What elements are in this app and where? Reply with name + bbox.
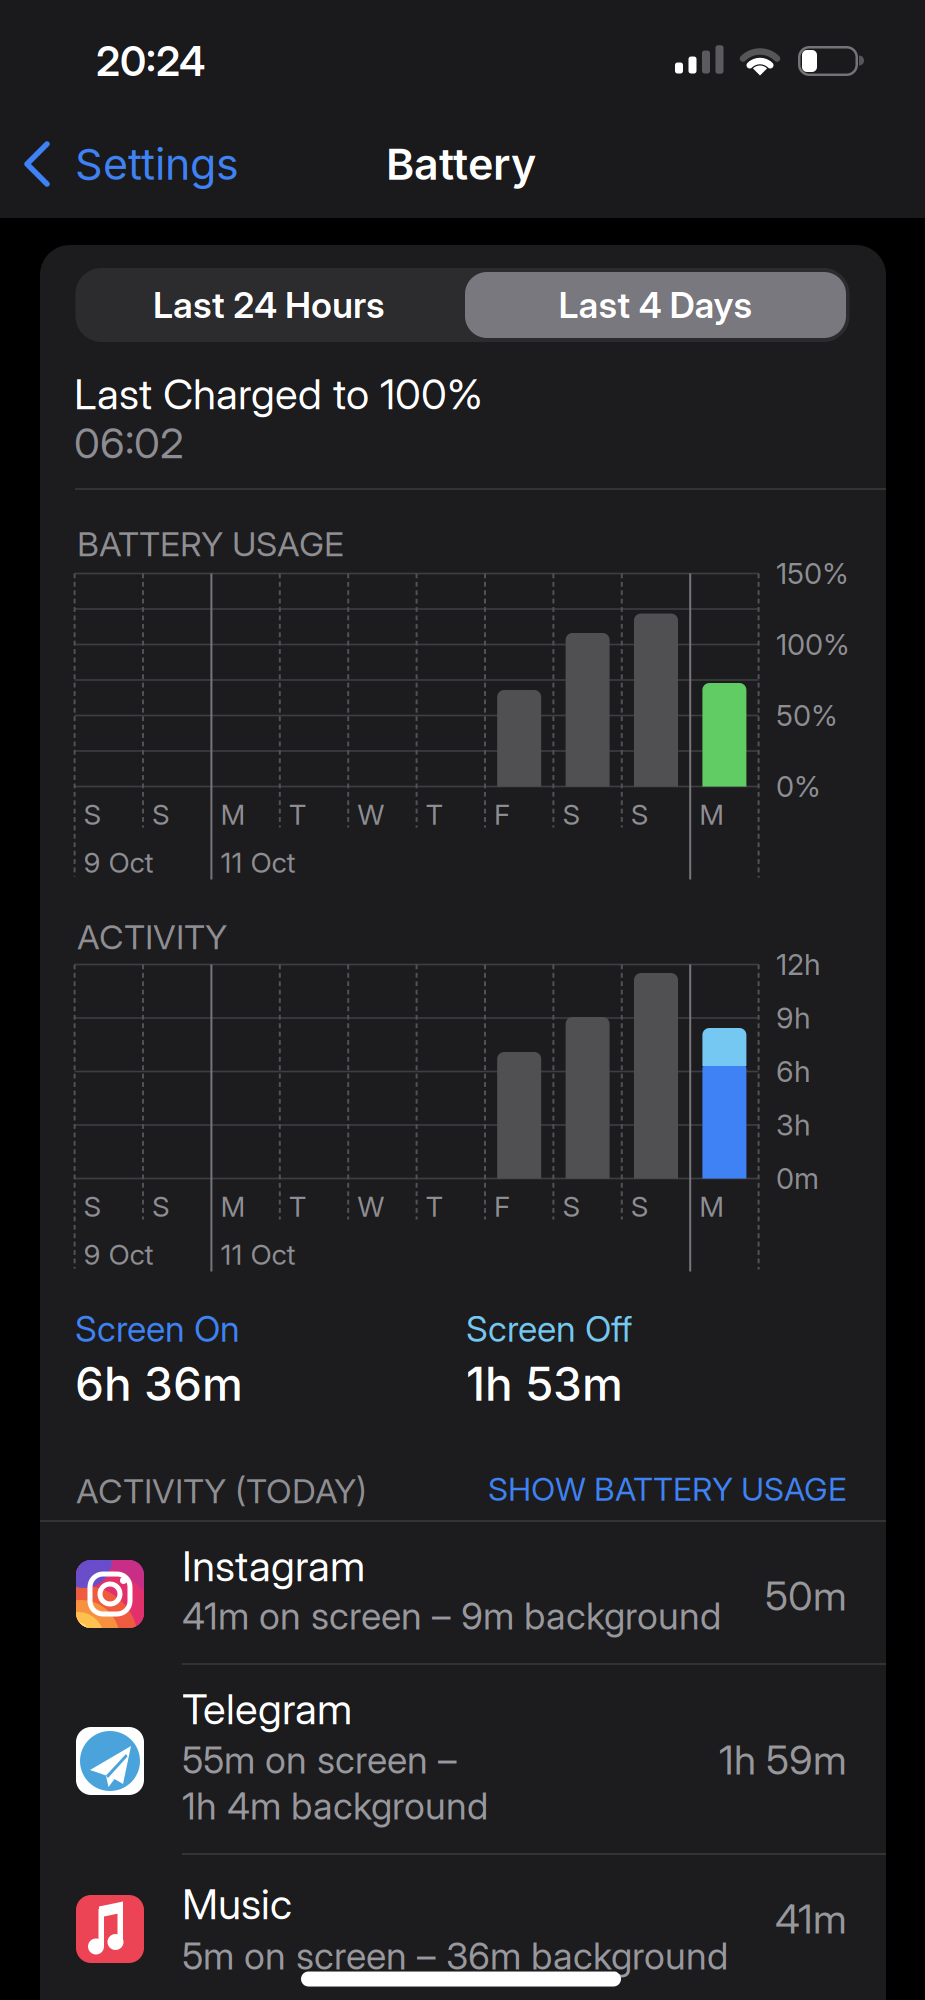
staticText: Instagram	[182, 1541, 365, 1591]
staticText: T	[426, 1190, 444, 1223]
staticText: S	[562, 798, 580, 831]
staticText: W	[357, 1190, 384, 1223]
staticText: M	[220, 798, 245, 831]
staticText: ACTIVITY (TODAY)	[76, 1470, 367, 1511]
button[interactable]: Instagram	[40, 1521, 886, 1664]
staticText: Screen On	[75, 1308, 240, 1350]
button[interactable]: Last 24 Hours	[76, 268, 462, 342]
staticText: S	[631, 798, 649, 831]
staticText: M	[220, 1190, 245, 1223]
staticText: 0m	[776, 1161, 819, 1196]
staticText: 100%	[776, 627, 850, 662]
staticText: S	[84, 798, 102, 831]
button[interactable]: SHOW BATTERY USAGE	[407, 1462, 847, 1516]
button[interactable]: Music	[40, 1854, 886, 2000]
staticText: Telegram	[182, 1684, 352, 1734]
staticText: ACTIVITY	[77, 916, 227, 957]
staticText: Settings	[75, 138, 239, 190]
staticText: W	[357, 798, 384, 831]
staticText: Battery	[386, 138, 536, 190]
staticText: 55m on screen –	[182, 1738, 457, 1782]
staticText: 9 Oct	[84, 846, 154, 879]
staticText: 1h 53m	[466, 1356, 623, 1412]
staticText: 9 Oct	[84, 1238, 154, 1271]
staticText: 1h 59m	[719, 1736, 847, 1784]
staticText: S	[562, 1190, 580, 1223]
staticText: 0%	[776, 769, 821, 804]
staticText: Last 4 Days	[558, 283, 752, 327]
staticText: 12h	[776, 947, 821, 982]
staticText: T	[289, 798, 307, 831]
button[interactable]: Back	[23, 140, 303, 188]
staticText: 150%	[776, 556, 849, 591]
button[interactable]: Last 4 Days	[462, 268, 849, 342]
staticText: S	[152, 1190, 170, 1223]
staticText: 1h 4m background	[182, 1784, 488, 1828]
staticText: 50%	[776, 698, 838, 733]
staticText: 20:24	[96, 36, 205, 86]
staticText: 6h 36m	[75, 1356, 243, 1412]
staticText: BATTERY USAGE	[77, 523, 344, 564]
staticText: S	[84, 1190, 102, 1223]
staticText: S	[152, 798, 170, 831]
staticText: 11 Oct	[220, 1238, 295, 1271]
staticText: Last 24 Hours	[153, 283, 385, 327]
staticText: S	[631, 1190, 649, 1223]
staticText: Screen Off	[466, 1308, 632, 1350]
staticText: 41m	[775, 1895, 847, 1943]
staticText: 50m	[765, 1572, 847, 1620]
staticText: 9h	[776, 1000, 811, 1036]
staticText: F	[494, 798, 510, 831]
staticText: T	[289, 1190, 307, 1223]
staticText: Last Charged to 100%	[74, 369, 483, 419]
staticText: M	[699, 798, 724, 831]
staticText: T	[426, 798, 444, 831]
staticText: 41m on screen – 9m background	[182, 1594, 721, 1638]
staticText: F	[494, 1190, 510, 1223]
staticText: 11 Oct	[220, 846, 295, 879]
staticText: 6h	[776, 1054, 811, 1089]
staticText: Music	[182, 1879, 292, 1929]
staticText: SHOW BATTERY USAGE	[488, 1470, 847, 1508]
staticText: 06:02	[74, 418, 184, 468]
button[interactable]: Telegram	[40, 1664, 886, 1854]
staticText: M	[699, 1190, 724, 1223]
staticText: 3h	[776, 1107, 811, 1143]
staticText: 5m on screen – 36m background	[182, 1934, 728, 1978]
